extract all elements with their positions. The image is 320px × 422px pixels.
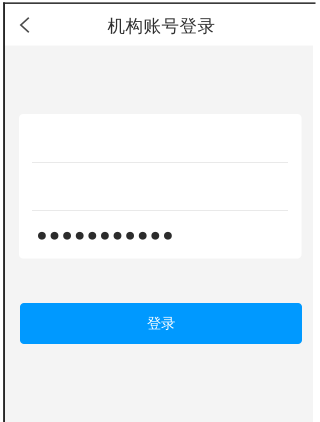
button[interactable]: 登录 bbox=[20, 303, 302, 344]
button[interactable]: 密码 bbox=[19, 211, 301, 258]
button[interactable]: 返回 bbox=[7, 5, 43, 45]
staticText: 登录 bbox=[147, 314, 175, 332]
staticText: 机构账号登录 bbox=[107, 15, 215, 37]
button[interactable]: 验证码 bbox=[19, 163, 301, 211]
